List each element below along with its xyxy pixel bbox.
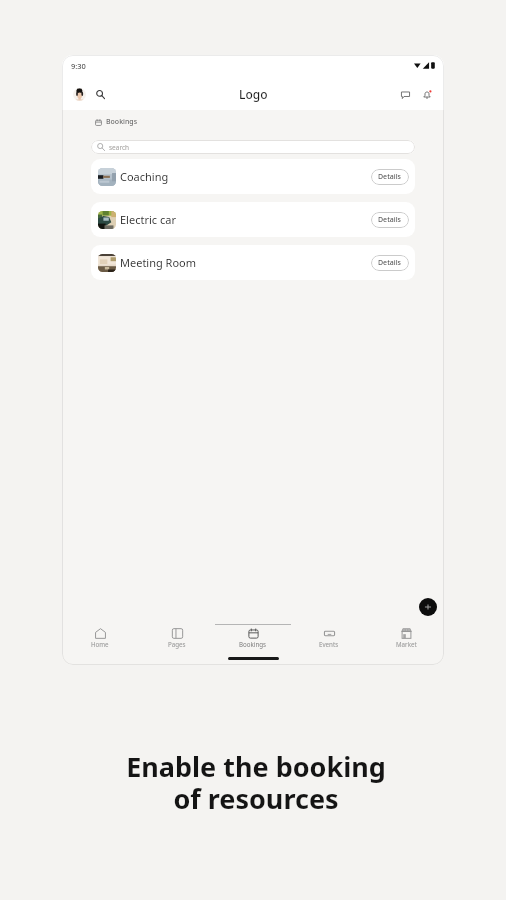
staticText: Details — [378, 172, 402, 182]
staticText: Bookings — [106, 117, 138, 127]
button[interactable]: Messages — [399, 88, 412, 101]
button[interactable]: search — [91, 140, 415, 154]
staticText: 9:30 — [71, 61, 86, 71]
staticText: Events — [319, 640, 339, 648]
staticText: Details — [378, 258, 402, 268]
staticText: Electric car — [120, 212, 176, 227]
button[interactable]: Details — [371, 212, 409, 228]
staticText: search — [109, 143, 130, 152]
staticText: Logo — [239, 86, 268, 102]
button[interactable]: Events — [291, 624, 367, 654]
staticText: Meeting Room — [120, 255, 197, 270]
button[interactable]: Profile — [73, 88, 86, 101]
button[interactable]: Notifications — [420, 88, 433, 101]
button[interactable]: Search — [93, 87, 107, 101]
staticText: Details — [378, 215, 402, 225]
staticText: Pages — [168, 640, 186, 648]
button[interactable]: Meeting Room — [91, 245, 415, 280]
staticText: Coaching — [120, 169, 169, 184]
button[interactable]: Bookings — [215, 624, 291, 654]
button[interactable]: Electric car — [91, 202, 415, 237]
button[interactable]: Details — [371, 169, 409, 185]
staticText: Home — [91, 640, 109, 648]
button[interactable]: Details — [371, 255, 409, 271]
button[interactable]: Coaching — [91, 159, 415, 194]
button[interactable]: Pages — [139, 624, 215, 654]
button[interactable]: Add booking — [419, 598, 437, 616]
button[interactable]: Home — [62, 624, 138, 654]
button[interactable]: Market — [368, 624, 444, 654]
staticText: Enable the booking of resources — [126, 748, 386, 817]
staticText: Bookings — [239, 640, 267, 648]
staticText: Market — [396, 640, 417, 648]
